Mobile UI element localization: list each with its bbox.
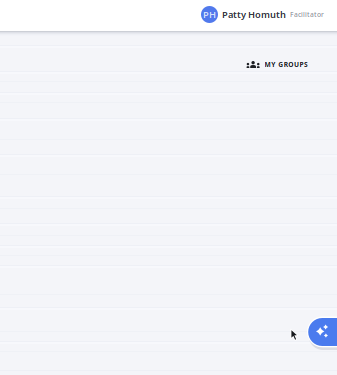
button[interactable]: PH (201, 6, 324, 23)
button[interactable]: MY GROUPS (247, 60, 308, 69)
button[interactable]: AI assistant (307, 316, 337, 352)
staticText: MY GROUPS (265, 60, 308, 69)
staticText: Facilitator (290, 10, 324, 19)
staticText: Patty Homuth (222, 8, 286, 21)
staticText: PH (203, 8, 216, 21)
